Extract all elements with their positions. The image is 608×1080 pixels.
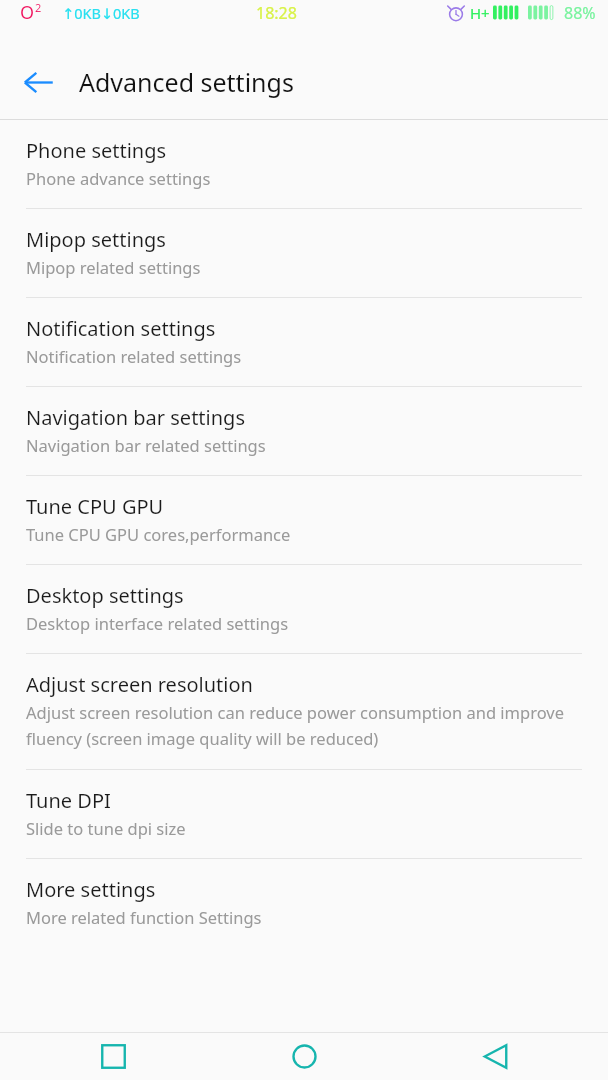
button[interactable]: Adjust screen resolution xyxy=(0,654,608,769)
staticText: 18:28 xyxy=(256,2,297,24)
staticText: H+ xyxy=(470,3,490,23)
staticText: Tune CPU GPU cores,performance xyxy=(26,523,291,545)
staticText: ↑0KB↓0KB xyxy=(62,3,140,23)
button[interactable]: Back xyxy=(472,1033,519,1080)
staticText: Advanced settings xyxy=(79,65,294,99)
staticText: Adjust screen resolution can reduce powe… xyxy=(26,701,582,750)
staticText: Navigation bar settings xyxy=(26,404,245,431)
staticText: 2 xyxy=(35,0,42,15)
staticText: Notification settings xyxy=(26,315,216,342)
staticText: Navigation bar related settings xyxy=(26,434,266,456)
staticText: Tune DPI xyxy=(26,787,111,814)
button[interactable]: Mipop settings xyxy=(0,209,608,297)
staticText: Tune CPU GPU xyxy=(26,493,164,520)
staticText: Adjust screen resolution xyxy=(26,671,253,698)
button[interactable]: Tune CPU GPU xyxy=(0,476,608,564)
staticText: Desktop interface related settings xyxy=(26,612,289,634)
button[interactable]: Phone settings xyxy=(0,120,608,208)
staticText: Desktop settings xyxy=(26,582,184,609)
button[interactable]: Navigation bar settings xyxy=(0,387,608,475)
staticText: Mipop settings xyxy=(26,226,166,253)
button[interactable]: Home xyxy=(281,1033,328,1080)
button[interactable]: More settings xyxy=(0,859,608,947)
button[interactable]: Desktop settings xyxy=(0,565,608,653)
button[interactable]: Tune DPI xyxy=(0,770,608,858)
button[interactable]: Recent apps xyxy=(90,1033,137,1080)
staticText: More related function Settings xyxy=(26,906,262,928)
button[interactable]: Notification settings xyxy=(0,298,608,386)
staticText: O xyxy=(20,0,35,25)
staticText: Slide to tune dpi size xyxy=(26,817,186,839)
staticText: Notification related settings xyxy=(26,345,242,367)
staticText: Phone advance settings xyxy=(26,167,211,189)
button[interactable]: Back xyxy=(12,56,64,108)
staticText: 88% xyxy=(564,2,596,24)
staticText: Phone settings xyxy=(26,137,167,164)
staticText: More settings xyxy=(26,876,156,903)
staticText: Mipop related settings xyxy=(26,256,201,278)
